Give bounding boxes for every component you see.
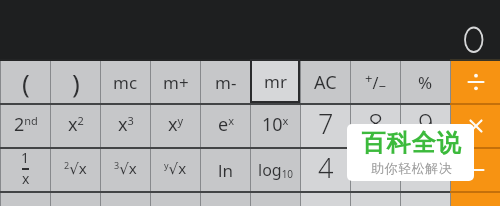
staticText: x xyxy=(22,169,30,188)
staticText: xy xyxy=(168,112,184,137)
staticText: 百科全说 xyxy=(361,128,461,158)
staticText: mr xyxy=(264,70,287,93)
button[interactable]: 5 xyxy=(351,149,400,191)
button[interactable]: 2nd xyxy=(1,105,50,147)
staticText: x3 xyxy=(118,112,134,137)
button[interactable]: 7 xyxy=(301,105,350,147)
button[interactable]: 1 xyxy=(1,149,50,191)
button[interactable]: 10x xyxy=(251,105,300,147)
staticText: log10 xyxy=(258,159,294,181)
button[interactable]: mr xyxy=(252,61,298,101)
staticText: 5 xyxy=(368,149,384,186)
button[interactable]: ln xyxy=(201,149,250,191)
button[interactable]: 4 xyxy=(301,149,350,191)
staticText: x2 xyxy=(68,112,84,137)
staticText: 4 xyxy=(318,149,334,186)
staticText: 7 xyxy=(318,105,334,142)
staticText: % xyxy=(418,71,433,94)
button[interactable] xyxy=(451,105,500,147)
button[interactable]: 3√x xyxy=(101,149,150,191)
button[interactable]: % xyxy=(401,61,450,103)
button[interactable]: m- xyxy=(201,61,250,103)
button[interactable]: log10 xyxy=(251,149,300,191)
button[interactable]: 6 xyxy=(401,149,450,191)
staticText: y√x xyxy=(164,158,187,178)
button[interactable]: mc xyxy=(101,61,150,103)
button[interactable]: y√x xyxy=(151,149,200,191)
staticText: m- xyxy=(215,71,237,94)
staticText: 8 xyxy=(368,105,384,142)
button[interactable]: x2 xyxy=(51,105,100,147)
staticText: +/− xyxy=(365,69,386,95)
staticText: 1 xyxy=(21,148,30,167)
button[interactable]: ) xyxy=(51,61,100,103)
staticText: 2nd xyxy=(14,112,38,137)
button[interactable]: x3 xyxy=(101,105,150,147)
staticText: 3√x xyxy=(114,158,137,178)
button[interactable]: 8 xyxy=(351,105,400,147)
button[interactable]: +/− xyxy=(351,61,400,103)
staticText: 助你轻松解决 xyxy=(371,160,452,176)
button[interactable]: 9 xyxy=(401,105,450,147)
staticText: AC xyxy=(314,70,337,95)
button[interactable]: 2√x xyxy=(51,149,100,191)
button[interactable]: ( xyxy=(1,61,50,103)
staticText: mc xyxy=(113,71,138,94)
button[interactable]: ex xyxy=(201,105,250,147)
staticText: 9 xyxy=(418,105,434,142)
staticText: m+ xyxy=(163,71,189,94)
staticText: ex xyxy=(218,112,234,137)
staticText: ( xyxy=(22,65,30,100)
button[interactable] xyxy=(451,61,500,103)
staticText: 2√x xyxy=(64,158,87,178)
button[interactable]: 百科全说 xyxy=(347,124,474,181)
button[interactable]: AC xyxy=(301,61,350,103)
button[interactable]: xy xyxy=(151,105,200,147)
staticText: ln xyxy=(218,159,233,182)
staticText: 6 xyxy=(418,149,434,186)
button[interactable]: m+ xyxy=(151,61,200,103)
staticText: 10x xyxy=(262,112,289,137)
button[interactable] xyxy=(451,149,500,191)
staticText: ) xyxy=(72,65,80,100)
